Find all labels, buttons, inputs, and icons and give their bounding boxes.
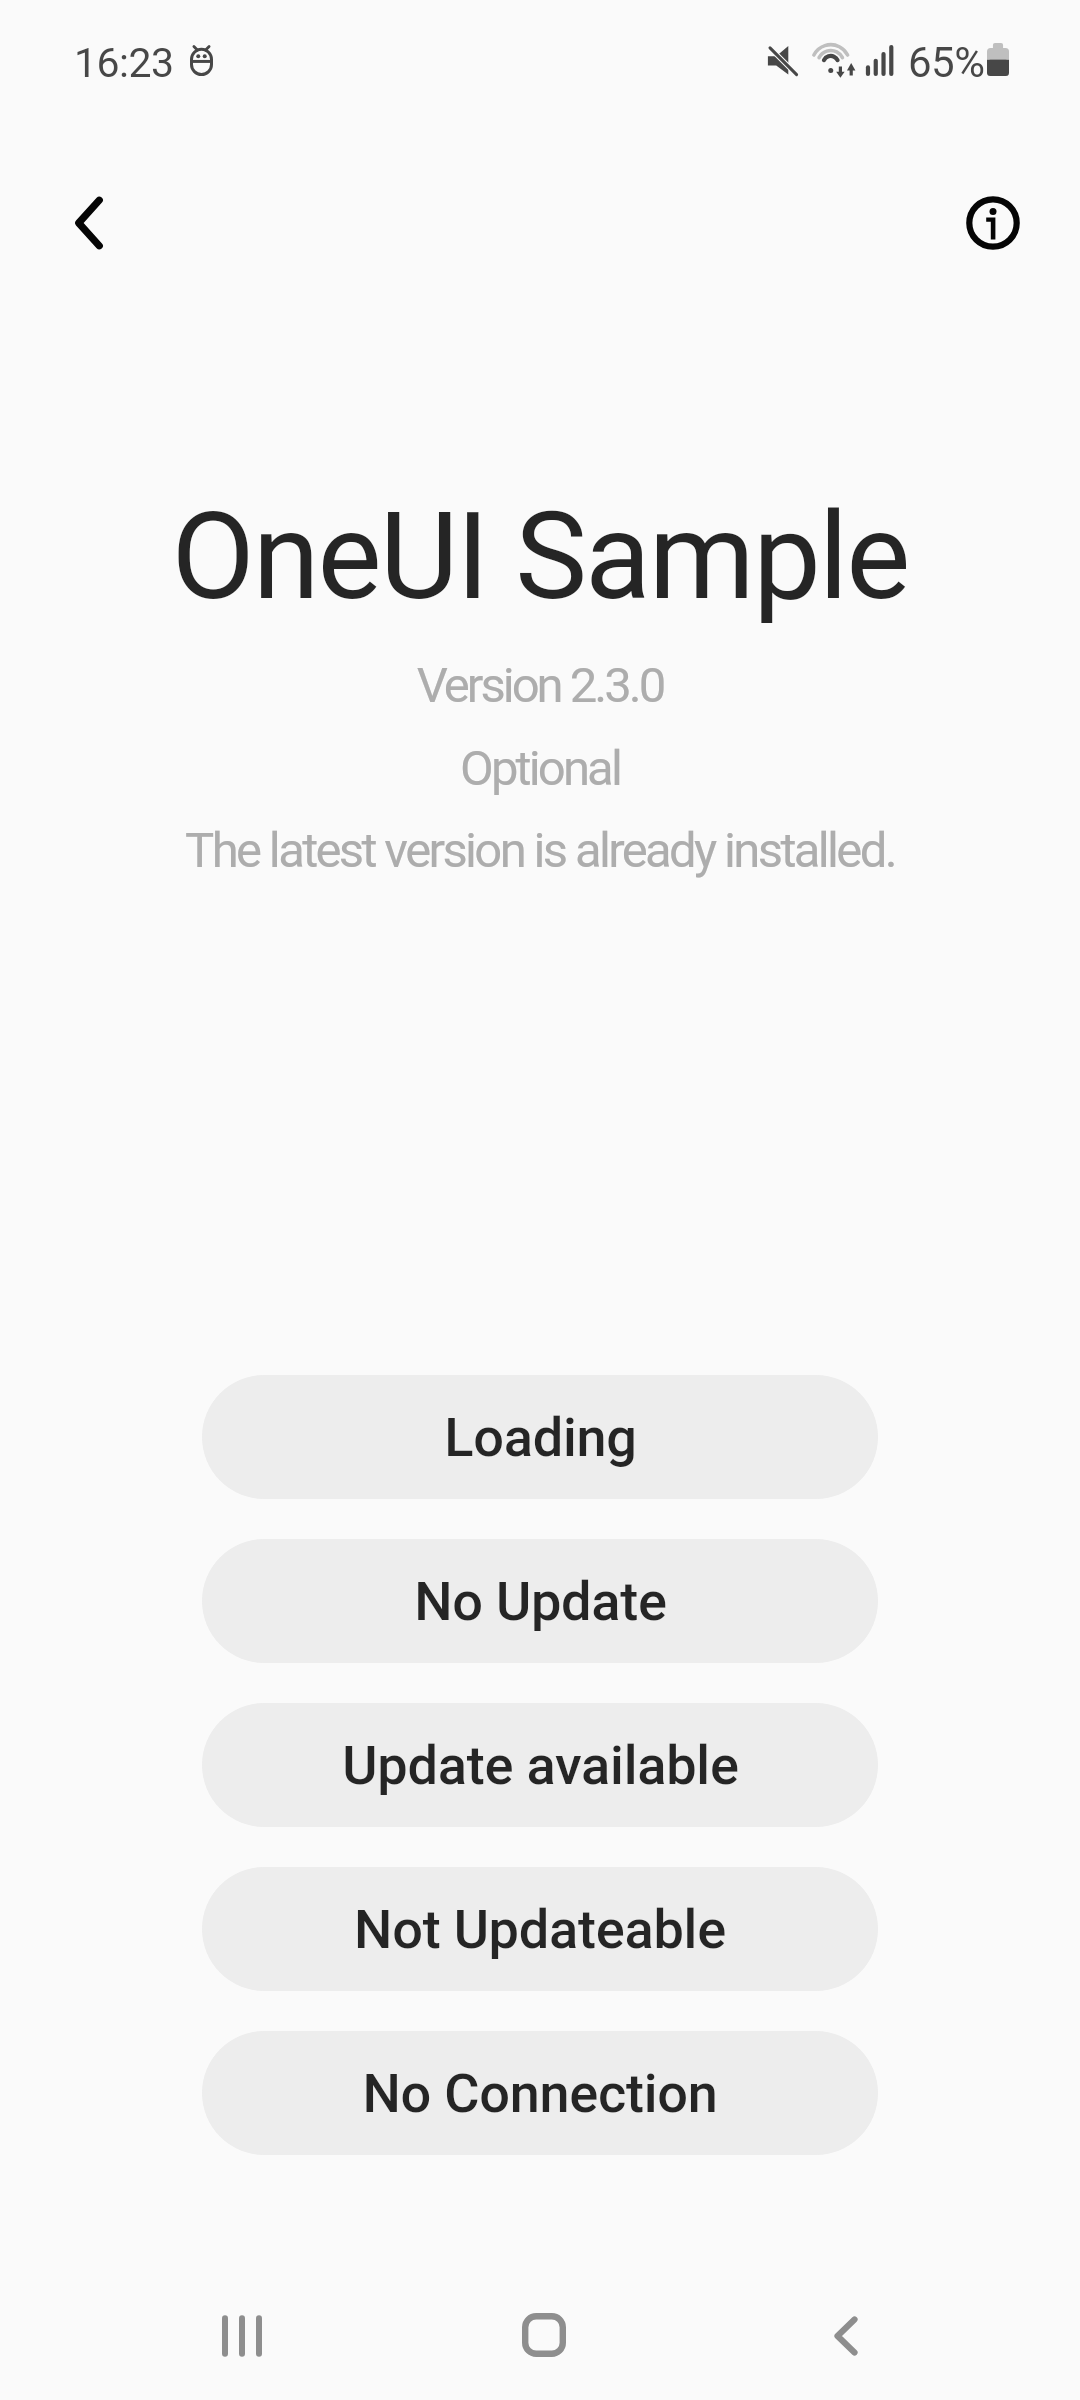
staticText: No Connection xyxy=(362,2062,718,2125)
button[interactable]: No Connection xyxy=(202,2031,878,2155)
staticText: 65% xyxy=(908,38,985,87)
staticText: OneUI Sample xyxy=(0,486,1080,628)
staticText: 16:23 xyxy=(74,39,174,87)
button[interactable]: Home xyxy=(486,2277,602,2393)
button[interactable]: Recent apps xyxy=(184,2278,300,2394)
button[interactable]: Information xyxy=(940,170,1045,275)
button[interactable]: Back xyxy=(788,2278,904,2394)
button[interactable]: Navigate up xyxy=(36,170,141,275)
button[interactable]: Loading xyxy=(202,1375,878,1499)
button[interactable]: Not Updateable xyxy=(202,1867,878,1991)
staticText: Optional xyxy=(0,740,1080,797)
staticText: No Update xyxy=(414,1570,667,1633)
staticText: Not Updateable xyxy=(354,1898,726,1961)
staticText: Loading xyxy=(444,1406,637,1469)
button[interactable]: Update available xyxy=(202,1703,878,1827)
staticText: Version 2.3.0 xyxy=(0,657,1080,714)
staticText: The latest version is already installed. xyxy=(0,822,1080,879)
staticText: Update available xyxy=(342,1734,739,1797)
button[interactable]: No Update xyxy=(202,1539,878,1663)
